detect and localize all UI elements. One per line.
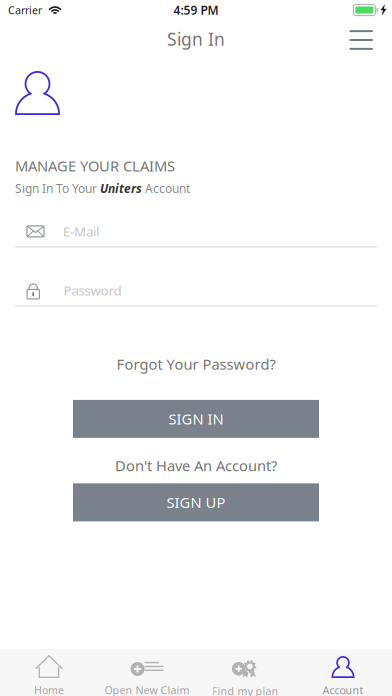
staticText: Uniters bbox=[100, 180, 142, 196]
staticText: Account bbox=[142, 180, 190, 196]
staticText: MANAGE YOUR CLAIMS bbox=[15, 156, 175, 175]
button[interactable]: Forgot Your Password? bbox=[0, 348, 392, 380]
staticText: Forgot Your Password? bbox=[116, 354, 275, 374]
staticText: Don't Have An Account? bbox=[115, 456, 277, 475]
button[interactable]: SIGN UP bbox=[73, 483, 319, 521]
button[interactable]: Menu bbox=[335, 20, 392, 58]
staticText: Home bbox=[34, 683, 64, 696]
staticText: SIGN IN bbox=[168, 409, 223, 429]
button[interactable]: Don't Have An Account? bbox=[0, 451, 392, 480]
staticText: Open New Claim bbox=[104, 683, 189, 696]
button[interactable]: Find my plan bbox=[196, 649, 294, 696]
staticText: Password bbox=[63, 282, 121, 299]
button[interactable]: SIGN IN bbox=[73, 400, 319, 438]
staticText: Sign In bbox=[167, 27, 225, 50]
button[interactable]: Open New Claim bbox=[98, 649, 196, 696]
button[interactable]: Home bbox=[0, 649, 98, 696]
staticText: Find my plan bbox=[211, 684, 278, 696]
staticText: Sign In To Your bbox=[15, 180, 100, 196]
button[interactable]: Account bbox=[294, 649, 392, 696]
staticText: E-Mail bbox=[63, 223, 99, 240]
staticText: Account bbox=[322, 683, 363, 696]
staticText: 4:59 PM bbox=[173, 2, 218, 18]
staticText: SIGN UP bbox=[166, 493, 225, 512]
staticText: Carrier bbox=[8, 3, 42, 17]
